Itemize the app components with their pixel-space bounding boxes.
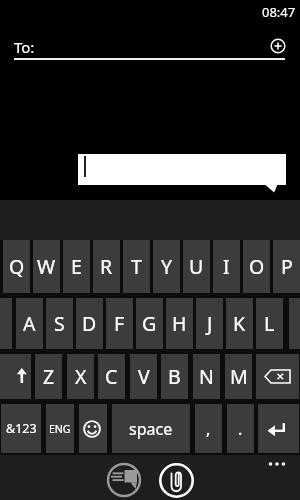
button[interactable] bbox=[258, 404, 299, 453]
staticText: D bbox=[82, 310, 97, 337]
staticText: E bbox=[71, 253, 82, 280]
button[interactable] bbox=[79, 404, 107, 453]
staticText: C bbox=[105, 363, 118, 390]
button[interactable] bbox=[266, 34, 290, 58]
button[interactable]: T bbox=[123, 240, 150, 293]
button[interactable]: , bbox=[195, 404, 222, 453]
button[interactable] bbox=[256, 354, 299, 399]
button[interactable]: M bbox=[225, 354, 252, 399]
button[interactable] bbox=[78, 154, 286, 185]
staticText: &123 bbox=[6, 420, 37, 437]
button[interactable]: G bbox=[136, 298, 163, 349]
button[interactable]: C bbox=[98, 354, 125, 399]
staticText: ENG bbox=[49, 422, 71, 436]
staticText: F bbox=[114, 310, 125, 337]
button[interactable]: . bbox=[227, 404, 254, 453]
staticText: J bbox=[207, 310, 213, 337]
staticText: U bbox=[189, 253, 204, 280]
button[interactable]: space bbox=[112, 404, 190, 453]
staticText: Q bbox=[9, 253, 25, 280]
button[interactable]: Y bbox=[153, 240, 180, 293]
button[interactable]: K bbox=[226, 298, 253, 349]
button[interactable]: &123 bbox=[1, 404, 41, 453]
button[interactable]: J bbox=[196, 298, 223, 349]
button[interactable]: W bbox=[33, 240, 60, 293]
staticText: Z bbox=[43, 363, 55, 390]
button[interactable] bbox=[0, 354, 31, 399]
button[interactable]: S bbox=[46, 298, 73, 349]
button[interactable]: U bbox=[183, 240, 210, 293]
button[interactable]: N bbox=[193, 354, 220, 399]
button[interactable]: ENG bbox=[46, 404, 74, 453]
button[interactable]: B bbox=[161, 354, 188, 399]
button[interactable]: I bbox=[213, 240, 240, 293]
button[interactable]: L bbox=[256, 298, 283, 349]
staticText: K bbox=[233, 310, 246, 337]
staticText: L bbox=[264, 310, 275, 337]
button[interactable]: R bbox=[93, 240, 120, 293]
button[interactable]: P bbox=[273, 240, 300, 293]
staticText: I bbox=[223, 253, 230, 280]
staticText: M bbox=[230, 363, 248, 390]
staticText: O bbox=[249, 253, 265, 280]
button[interactable] bbox=[106, 462, 142, 498]
staticText: Y bbox=[161, 253, 173, 280]
button[interactable]: A bbox=[16, 298, 43, 349]
staticText: S bbox=[54, 310, 65, 337]
staticText: N bbox=[199, 363, 214, 390]
staticText: G bbox=[142, 310, 157, 337]
staticText: H bbox=[172, 310, 187, 337]
staticText: To: bbox=[14, 37, 35, 57]
staticText: V bbox=[138, 363, 150, 390]
button[interactable]: F bbox=[106, 298, 133, 349]
staticText: R bbox=[100, 253, 113, 280]
button[interactable]: E bbox=[63, 240, 90, 293]
staticText: T bbox=[131, 253, 142, 280]
button[interactable]: O bbox=[243, 240, 270, 293]
staticText: P bbox=[281, 253, 293, 280]
staticText: X bbox=[75, 363, 87, 390]
staticText: space bbox=[129, 418, 173, 440]
staticText: . bbox=[238, 418, 243, 440]
staticText: , bbox=[206, 418, 211, 440]
button[interactable]: H bbox=[166, 298, 193, 349]
staticText: 08:47 bbox=[262, 3, 296, 21]
staticText: W bbox=[37, 253, 56, 280]
button[interactable]: Q bbox=[3, 240, 30, 293]
button[interactable] bbox=[159, 463, 194, 498]
staticText: A bbox=[23, 310, 36, 337]
button[interactable]: X bbox=[67, 354, 94, 399]
button[interactable]: V bbox=[130, 354, 157, 399]
staticText: B bbox=[168, 363, 181, 390]
button[interactable]: Z bbox=[35, 354, 62, 399]
button[interactable]: D bbox=[76, 298, 103, 349]
